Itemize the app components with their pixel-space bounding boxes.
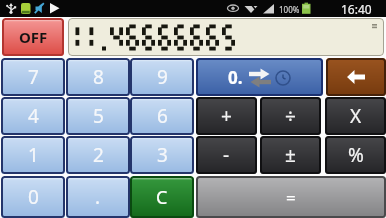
staticText: 9 — [157, 64, 168, 90]
button[interactable]: C — [130, 176, 194, 218]
button[interactable]: 7 — [1, 58, 65, 96]
button[interactable]: 1 — [1, 136, 65, 174]
staticText: ÷ — [285, 103, 296, 129]
staticText: 1 — [28, 142, 39, 168]
button[interactable]: X — [325, 97, 386, 135]
staticText: X — [350, 103, 362, 129]
staticText: % — [348, 142, 364, 168]
staticText: 16:40 — [341, 1, 372, 17]
staticText: 3 — [157, 142, 168, 168]
staticText: 2 — [93, 142, 104, 168]
button[interactable]: 4 — [1, 97, 65, 135]
button[interactable]: 9 — [130, 58, 194, 96]
staticText: OFF — [19, 27, 48, 47]
staticText: ± — [285, 142, 296, 168]
button[interactable]: . — [66, 176, 130, 218]
button[interactable]: % — [325, 136, 386, 174]
staticText: 0. — [228, 66, 243, 89]
button[interactable]: 0. — [196, 58, 323, 96]
staticText: 6 — [157, 103, 168, 129]
staticText: C — [156, 185, 168, 210]
button[interactable]: OFF — [2, 18, 64, 56]
staticText: - — [223, 142, 230, 168]
staticText: = — [286, 186, 296, 209]
button[interactable]: = — [196, 176, 386, 218]
staticText: 100% — [279, 4, 300, 15]
staticText: 0 — [28, 184, 39, 210]
staticText: 7 — [28, 64, 39, 90]
button[interactable]: 8 — [66, 58, 130, 96]
button[interactable]: 0 — [1, 176, 65, 218]
staticText: + — [221, 103, 232, 129]
staticText: 5 — [93, 103, 104, 129]
button[interactable]: + — [196, 97, 257, 135]
staticText: 4 — [28, 103, 39, 129]
button[interactable]: 2 — [66, 136, 130, 174]
button[interactable]: ± — [260, 136, 321, 174]
staticText: 8 — [93, 64, 104, 90]
button[interactable]: - — [196, 136, 257, 174]
button[interactable]: 5 — [66, 97, 130, 135]
button[interactable]: 3 — [130, 136, 194, 174]
staticText: . — [95, 184, 101, 210]
button[interactable]: ÷ — [260, 97, 321, 135]
button[interactable] — [326, 58, 386, 96]
button[interactable]: 6 — [130, 97, 194, 135]
